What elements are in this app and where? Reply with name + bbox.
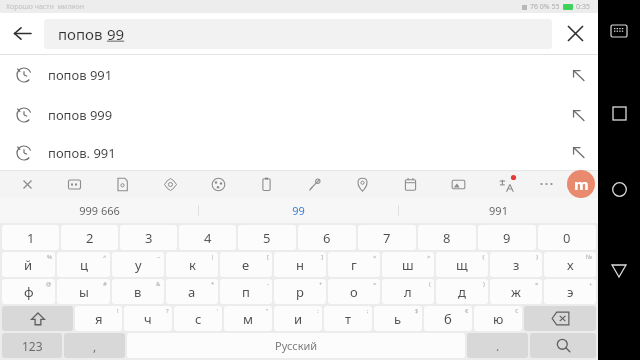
- staticText: п: [242, 283, 250, 301]
- button[interactable]: р: [274, 279, 326, 304]
- staticText: попов 999: [48, 106, 113, 124]
- button[interactable]: а: [166, 279, 218, 304]
- button[interactable]: Comma: [64, 333, 125, 358]
- button[interactable]: Pin: [290, 170, 338, 198]
- button[interactable]: 991: [399, 198, 598, 223]
- button[interactable]: Location: [338, 170, 386, 198]
- button[interactable]: с: [174, 306, 222, 331]
- button[interactable]: г: [328, 252, 380, 277]
- staticText: е: [242, 256, 250, 274]
- staticText: о: [350, 283, 358, 301]
- button[interactable]: Period: [467, 333, 528, 358]
- button[interactable]: 5: [238, 225, 296, 250]
- button[interactable]: б: [424, 306, 472, 331]
- button[interactable]: ш: [382, 252, 434, 277]
- button[interactable]: ж: [490, 279, 542, 304]
- button[interactable]: 999 666: [0, 198, 198, 223]
- button[interactable]: ы: [57, 279, 110, 304]
- button[interactable]: ц: [57, 252, 110, 277]
- staticText: х: [567, 256, 574, 274]
- staticText: 991: [489, 203, 508, 218]
- button[interactable]: попов: [44, 19, 552, 49]
- button[interactable]: ф: [2, 279, 55, 304]
- staticText: ': [217, 307, 219, 315]
- button[interactable]: Sticker: [51, 170, 98, 198]
- staticText: а: [188, 283, 196, 301]
- staticText: 6: [323, 229, 331, 247]
- button[interactable]: Back: [602, 254, 636, 288]
- button[interactable]: Clipboard: [242, 170, 290, 198]
- button[interactable]: ю: [474, 306, 522, 331]
- button[interactable]: Back: [0, 13, 44, 54]
- staticText: э: [567, 283, 574, 301]
- staticText: |: [211, 253, 215, 261]
- button[interactable]: е: [220, 252, 272, 277]
- staticText: ч: [144, 310, 152, 328]
- button[interactable]: Numbers: [2, 333, 62, 358]
- button[interactable]: Русский: [127, 333, 465, 358]
- button[interactable]: Image: [434, 170, 482, 198]
- staticText: %: [47, 253, 52, 261]
- button[interactable]: Insert suggestion: [558, 95, 598, 135]
- button[interactable]: Shift: [2, 306, 73, 331]
- button[interactable]: щ: [436, 252, 488, 277]
- button[interactable]: 0: [538, 225, 596, 250]
- staticText: 8: [443, 229, 451, 247]
- button[interactable]: л: [382, 279, 434, 304]
- button[interactable]: 1: [2, 225, 59, 250]
- button[interactable]: ь: [374, 306, 422, 331]
- button[interactable]: попов 991: [0, 55, 598, 95]
- staticText: ×: [535, 280, 539, 288]
- button[interactable]: т: [324, 306, 372, 331]
- staticText: !: [117, 307, 119, 315]
- button[interactable]: Theme: [194, 170, 242, 198]
- button[interactable]: 6: [298, 225, 356, 250]
- button[interactable]: к: [166, 252, 218, 277]
- button[interactable]: 7: [358, 225, 416, 250]
- staticText: 0: [563, 229, 571, 247]
- button[interactable]: Insert suggestion: [558, 135, 598, 170]
- staticText: к: [189, 256, 196, 274]
- button[interactable]: я: [75, 306, 122, 331]
- button[interactable]: д: [436, 279, 488, 304]
- button[interactable]: Insert suggestion: [558, 55, 598, 95]
- button[interactable]: Settings: [146, 170, 194, 198]
- button[interactable]: й: [2, 252, 55, 277]
- button[interactable]: попов 999: [0, 95, 598, 135]
- staticText: Русский: [275, 338, 318, 353]
- button[interactable]: Backspace: [524, 306, 596, 331]
- staticText: >: [427, 253, 431, 261]
- staticText: 76 0% 55: [530, 2, 560, 12]
- button[interactable]: 3: [120, 225, 177, 250]
- button[interactable]: 9: [478, 225, 536, 250]
- button[interactable]: Recent apps: [602, 96, 636, 130]
- button[interactable]: н: [274, 252, 326, 277]
- staticText: ж: [511, 283, 521, 301]
- button[interactable]: ч: [124, 306, 172, 331]
- button[interactable]: More options: [530, 170, 564, 198]
- button[interactable]: 99: [199, 198, 398, 223]
- button[interactable]: Keyboard: [604, 16, 634, 46]
- button[interactable]: Calendar: [386, 170, 434, 198]
- button[interactable]: з: [490, 252, 542, 277]
- button[interactable]: 4: [179, 225, 236, 250]
- button[interactable]: х: [544, 252, 596, 277]
- button[interactable]: Clear: [552, 13, 598, 54]
- button[interactable]: Document: [98, 170, 146, 198]
- button[interactable]: Close: [4, 170, 51, 198]
- staticText: 4: [204, 229, 212, 247]
- button[interactable]: о: [328, 279, 380, 304]
- button[interactable]: у: [112, 252, 164, 277]
- button[interactable]: Translate: [482, 170, 530, 198]
- button[interactable]: Home: [602, 172, 636, 206]
- button[interactable]: и: [274, 306, 322, 331]
- button[interactable]: Search: [530, 333, 596, 358]
- button[interactable]: 2: [61, 225, 118, 250]
- button[interactable]: э: [544, 279, 596, 304]
- staticText: .: [496, 338, 500, 354]
- button[interactable]: п: [220, 279, 272, 304]
- button[interactable]: попов. 991: [0, 135, 598, 170]
- button[interactable]: м: [224, 306, 272, 331]
- button[interactable]: 8: [418, 225, 476, 250]
- button[interactable]: в: [112, 279, 164, 304]
